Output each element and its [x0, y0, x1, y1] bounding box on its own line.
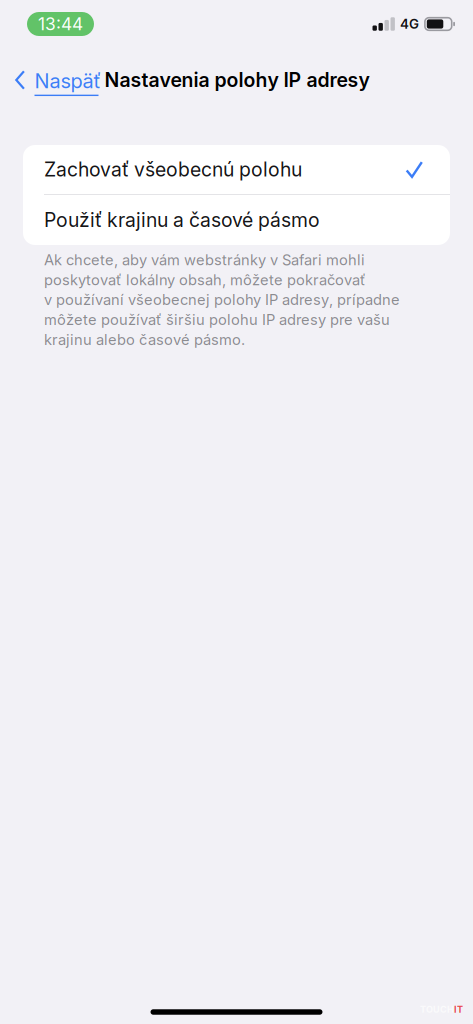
staticText: 13:44 [38, 13, 83, 34]
button[interactable]: Zachovať všeobecnú polohu [23, 145, 450, 194]
staticText: 4G [400, 16, 419, 32]
staticText: Naspäť [34, 69, 101, 93]
button[interactable]: Naspäť [0, 64, 101, 96]
staticText: Ak chcete, aby vám webstránky v Safari m… [44, 251, 365, 269]
staticText: môžete používať širšiu polohu IP adresy … [44, 311, 390, 328]
staticText: Nastavenia polohy IP adresy [104, 68, 369, 92]
staticText: IT [454, 1004, 463, 1015]
staticText: Zachovať všeobecnú polohu [44, 158, 302, 181]
staticText: Použiť krajinu a časové pásmo [44, 208, 320, 232]
staticText: poskytovať lokálny obsah, môžete pokračo… [44, 271, 366, 289]
staticText: krajinu alebo časové pásmo. [44, 331, 245, 348]
staticText: TOUCH [420, 1004, 454, 1015]
staticText: v používaní všeobecnej polohy IP adresy,… [44, 291, 400, 309]
button[interactable]: Použiť krajinu a časové pásmo [23, 195, 450, 245]
